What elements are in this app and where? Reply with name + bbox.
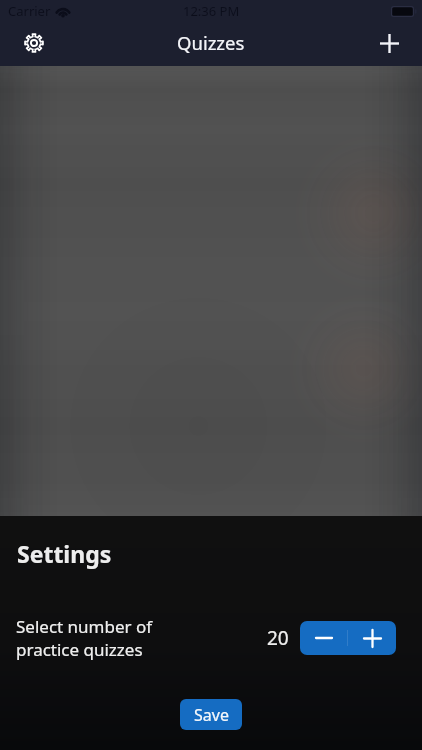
button[interactable]: Settings bbox=[13, 22, 55, 64]
staticText: Save bbox=[194, 704, 229, 726]
staticText: 12:36 PM bbox=[183, 2, 240, 20]
staticText: 20 bbox=[267, 625, 289, 651]
button[interactable]: Add bbox=[368, 22, 410, 64]
staticText: Quizzes bbox=[177, 30, 245, 55]
button[interactable]: Decrease bbox=[300, 621, 347, 655]
staticText: Select number of practice quizzes bbox=[16, 615, 153, 661]
staticText: Carrier bbox=[8, 2, 51, 20]
staticText: Settings bbox=[17, 538, 112, 569]
button[interactable]: Save bbox=[180, 699, 242, 730]
button[interactable]: Increase bbox=[348, 621, 396, 655]
